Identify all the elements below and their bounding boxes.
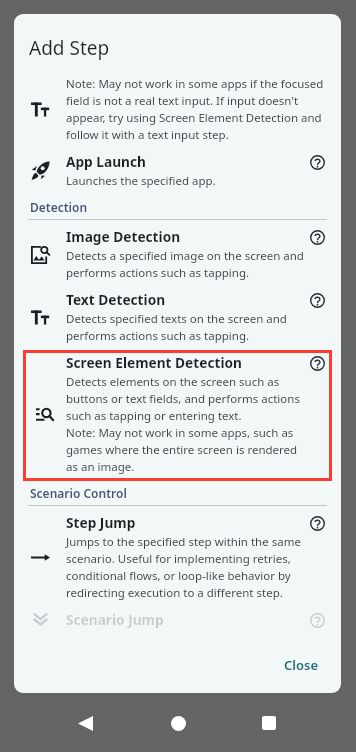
button[interactable]: Step Jump: [14, 510, 341, 607]
button[interactable]: Help: [304, 149, 330, 175]
staticText: Detects a specified image on the screen …: [66, 248, 314, 281]
staticText: Add Step: [29, 35, 110, 61]
button[interactable]: Scenario Jump: [14, 607, 341, 635]
button[interactable]: Note: May not work in some apps if the f…: [14, 73, 341, 149]
staticText: Detects specified texts on the screen an…: [66, 311, 314, 344]
staticText: Close: [284, 656, 319, 674]
button[interactable]: Image Detection: [14, 224, 341, 287]
button[interactable]: Help: [304, 287, 330, 313]
button[interactable]: Home: [164, 709, 192, 737]
staticText: Image Detection: [66, 227, 181, 246]
button[interactable]: App Launch: [14, 149, 341, 195]
button[interactable]: Recents: [255, 709, 283, 737]
staticText: Screen Element Detection: [66, 353, 242, 372]
staticText: Note: May not work in some apps if the f…: [66, 76, 328, 143]
staticText: Text Detection: [66, 290, 166, 309]
staticText: Launches the specified app.: [66, 173, 216, 189]
staticText: App Launch: [66, 152, 146, 171]
button[interactable]: Help: [304, 607, 330, 633]
button[interactable]: Back: [71, 709, 99, 737]
staticText: Detects elements on the screen such as b…: [66, 374, 306, 475]
button[interactable]: Screen Element Detection: [23, 350, 332, 481]
staticText: Scenario Control: [30, 485, 127, 501]
button[interactable]: Close: [272, 648, 331, 682]
staticText: Detection: [30, 199, 88, 215]
button[interactable]: Help: [304, 350, 330, 376]
button[interactable]: Help: [304, 510, 330, 536]
staticText: Jumps to the specified step within the s…: [66, 534, 314, 601]
button[interactable]: Text Detection: [14, 287, 341, 350]
staticText: Step Jump: [66, 513, 136, 532]
staticText: Scenario Jump: [66, 610, 164, 629]
button[interactable]: Help: [304, 224, 330, 250]
